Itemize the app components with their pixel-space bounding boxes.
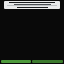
button[interactable]: Decline	[32, 60, 63, 63]
button[interactable]	[4, 1, 60, 9]
button[interactable]: Accept	[1, 60, 31, 63]
